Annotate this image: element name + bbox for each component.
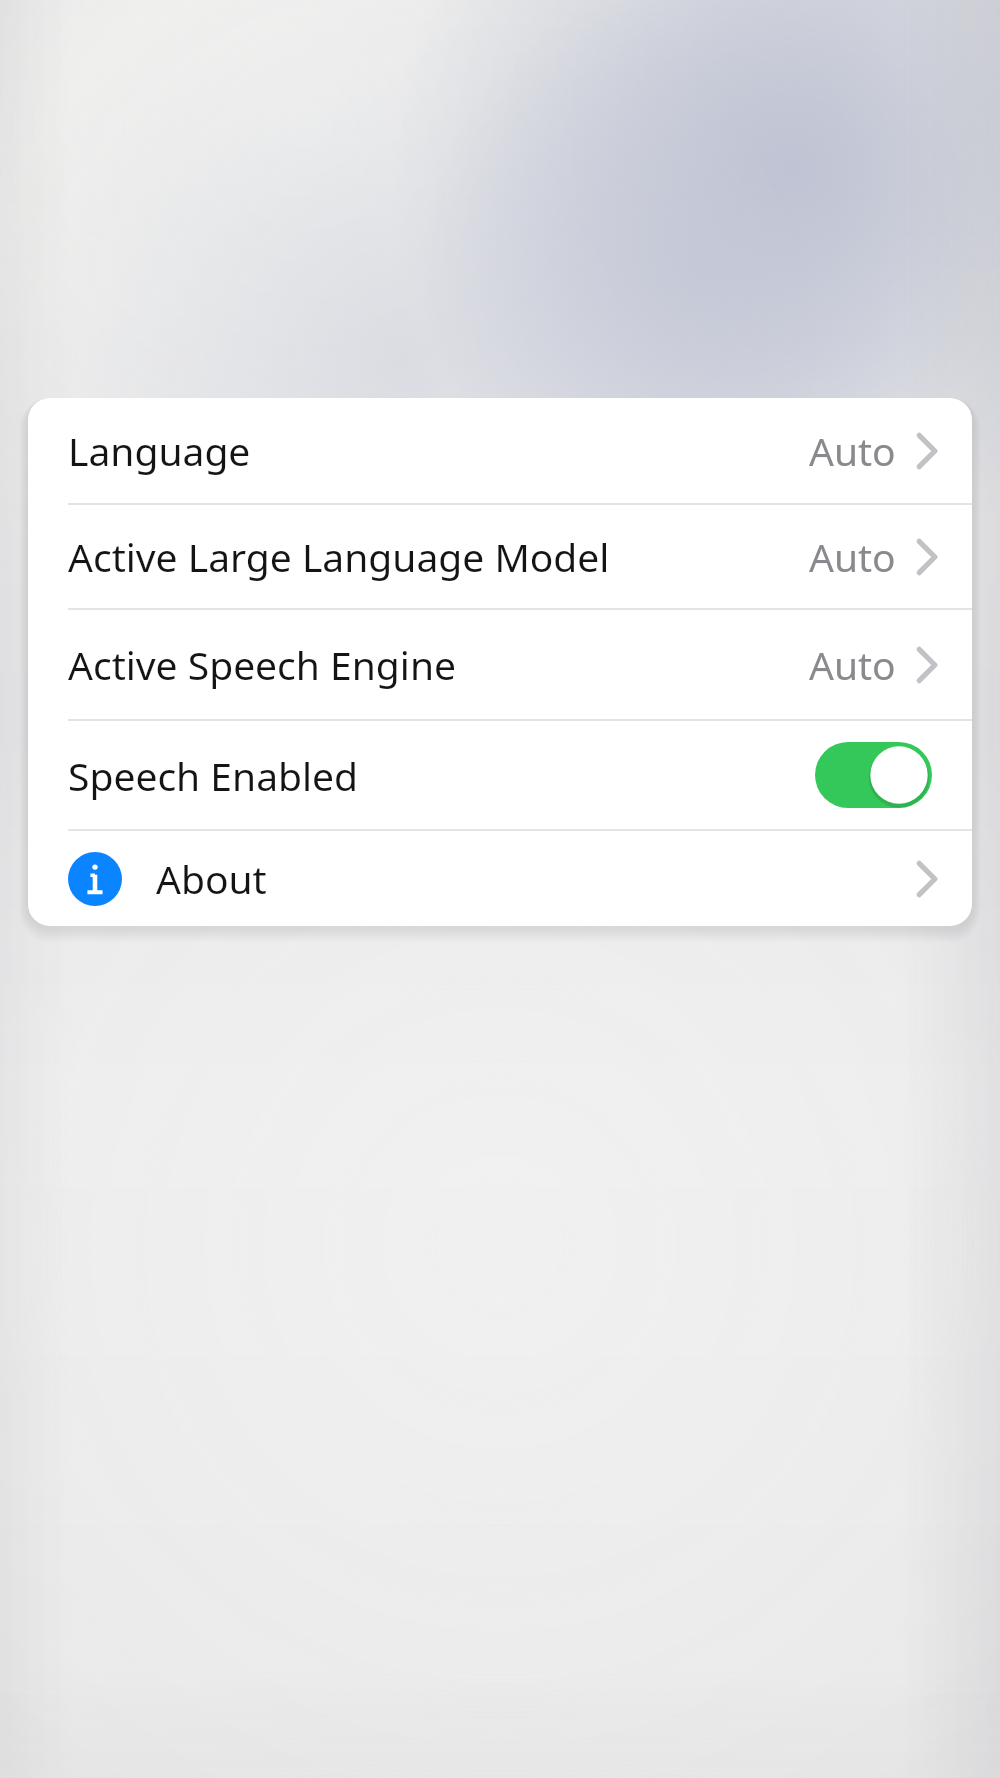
- button[interactable]: Speech Enabled: [28, 721, 972, 829]
- button[interactable]: Active Large Language Model: [28, 505, 972, 608]
- button[interactable]: Active Speech Engine: [28, 610, 972, 719]
- button[interactable]: Language: [28, 398, 972, 503]
- staticText: Auto: [809, 424, 896, 477]
- button[interactable]: About: [28, 831, 972, 926]
- staticText: About: [156, 852, 267, 905]
- staticText: Active Speech Engine: [68, 638, 457, 691]
- staticText: Language: [68, 424, 251, 477]
- staticText: Active Large Language Model: [68, 530, 610, 583]
- staticText: Auto: [809, 530, 896, 583]
- staticText: Auto: [809, 638, 896, 691]
- button[interactable]: Speech Enabled, on: [815, 742, 932, 808]
- staticText: Speech Enabled: [68, 749, 359, 802]
